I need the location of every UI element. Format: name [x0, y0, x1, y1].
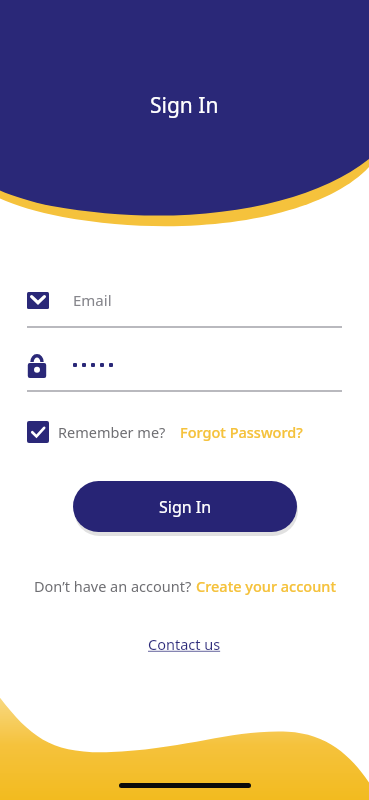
button[interactable]: Password: [27, 349, 342, 381]
button[interactable]: Create your account: [196, 576, 336, 596]
staticText: Create your account: [196, 576, 336, 596]
button[interactable]: Contact us: [148, 634, 221, 654]
button[interactable]: Remember me: [27, 421, 166, 443]
staticText: Email: [73, 290, 112, 310]
staticText: Sign In: [159, 496, 212, 518]
staticText: Contact us: [148, 634, 221, 654]
staticText: Sign In: [150, 91, 219, 120]
other: Remember me: [27, 421, 49, 443]
staticText: Remember me?: [58, 422, 166, 442]
staticText: Forgot Password?: [180, 422, 303, 442]
button[interactable]: Forgot Password?: [180, 422, 303, 442]
button[interactable]: Sign In: [73, 481, 297, 532]
other: Email: [27, 292, 49, 309]
staticText: Don’t have an account?: [34, 576, 196, 596]
button[interactable]: Email: [27, 283, 342, 317]
other: Password: [27, 353, 47, 378]
